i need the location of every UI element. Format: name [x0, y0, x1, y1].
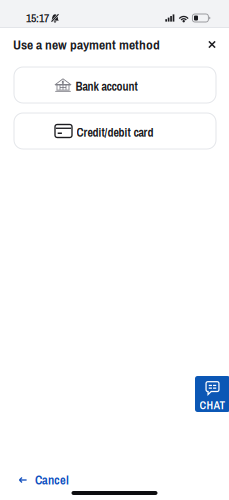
staticText: Cancel — [35, 472, 69, 488]
button[interactable]: Cancel — [0, 469, 229, 491]
button[interactable]: Credit/debit card — [14, 113, 216, 149]
staticText: CHAT — [199, 398, 225, 413]
staticText: Credit/debit card — [76, 124, 153, 141]
button[interactable]: Close — [201, 33, 223, 55]
staticText: 15:17 — [26, 10, 49, 26]
staticText: Bank account — [75, 78, 137, 95]
staticText: Use a new payment method — [13, 35, 160, 54]
button[interactable]: Chat — [195, 376, 229, 412]
button[interactable]: Bank account — [14, 67, 216, 103]
